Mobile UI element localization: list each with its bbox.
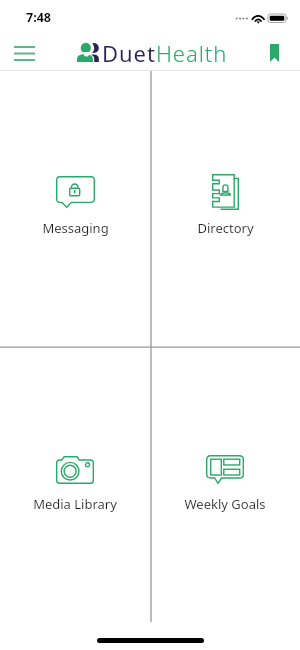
button[interactable]: Messaging <box>0 71 150 346</box>
button[interactable]: Weekly Goals <box>150 346 300 621</box>
staticText: Messaging <box>42 219 109 237</box>
staticText: Media Library <box>33 495 117 513</box>
staticText: Directory <box>197 219 254 237</box>
staticText: 7:48 <box>26 9 51 26</box>
staticText: Health <box>156 38 228 68</box>
button[interactable]: Media Library <box>0 346 150 621</box>
staticText: Duet <box>102 38 156 68</box>
button[interactable]: Bookmarks <box>256 34 292 66</box>
button[interactable]: Directory <box>150 71 300 346</box>
button[interactable]: Open navigation menu <box>2 34 46 66</box>
staticText: Weekly Goals <box>184 495 266 513</box>
